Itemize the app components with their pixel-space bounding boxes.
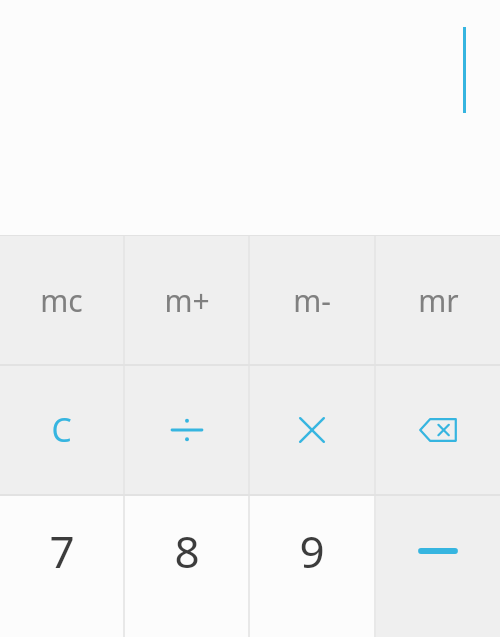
button[interactable]: 9	[250, 496, 374, 637]
staticText: 9	[299, 521, 325, 581]
button[interactable]: Minus	[376, 496, 500, 637]
button[interactable]: 8	[125, 496, 248, 637]
button[interactable]: C	[0, 366, 123, 494]
other: Minus	[417, 547, 459, 555]
staticText: m+	[164, 280, 210, 321]
staticText: C	[51, 408, 72, 452]
button[interactable]: m+	[125, 236, 248, 364]
button[interactable]: m-	[250, 236, 374, 364]
button[interactable]: mc	[0, 236, 123, 364]
staticText: mc	[40, 280, 83, 321]
button[interactable]: Divide	[125, 366, 248, 494]
button[interactable]: Multiply	[250, 366, 374, 494]
button[interactable]: mr	[376, 236, 500, 364]
staticText: mr	[418, 280, 459, 321]
button[interactable]: 7	[0, 496, 123, 637]
staticText: 7	[49, 521, 75, 581]
staticText: 8	[174, 521, 200, 581]
button[interactable]: Backspace	[376, 366, 500, 494]
staticText: m-	[293, 280, 331, 321]
